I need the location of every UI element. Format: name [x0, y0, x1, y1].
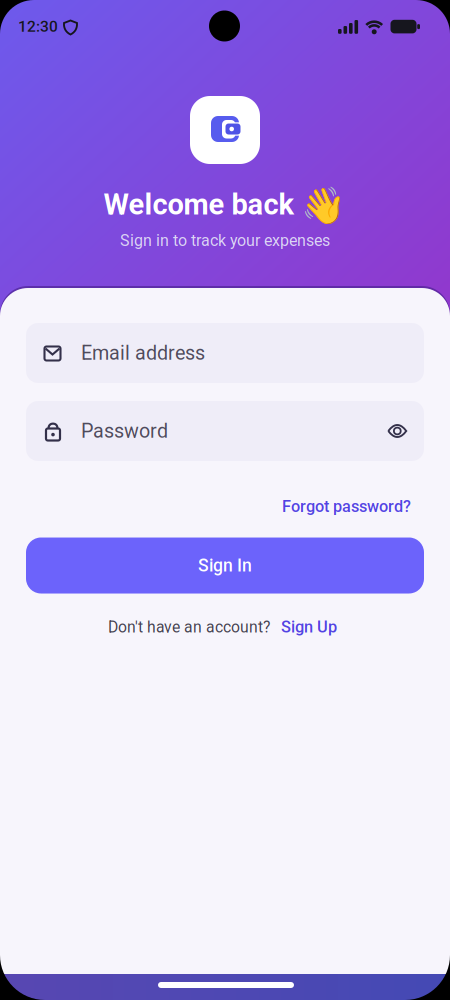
staticText: Welcome back — [103, 187, 294, 222]
staticText: Sign Up — [281, 617, 337, 637]
button[interactable]: Show password — [377, 411, 417, 451]
button[interactable]: Forgot password? — [282, 497, 411, 516]
staticText: Sign in to track your expenses — [120, 231, 330, 250]
button[interactable]: Sign In — [26, 537, 424, 593]
button[interactable]: Email address — [26, 323, 424, 383]
staticText: 12:30 — [18, 17, 58, 35]
staticText: Email address — [81, 341, 205, 364]
button[interactable]: Password — [26, 401, 424, 461]
staticText: Password — [81, 419, 168, 442]
staticText: 👋 — [301, 184, 346, 227]
staticText: Don't have an account? — [108, 618, 270, 636]
staticText: Forgot password? — [282, 497, 411, 516]
button[interactable]: Sign Up — [281, 617, 337, 637]
staticText: Sign In — [198, 555, 252, 576]
